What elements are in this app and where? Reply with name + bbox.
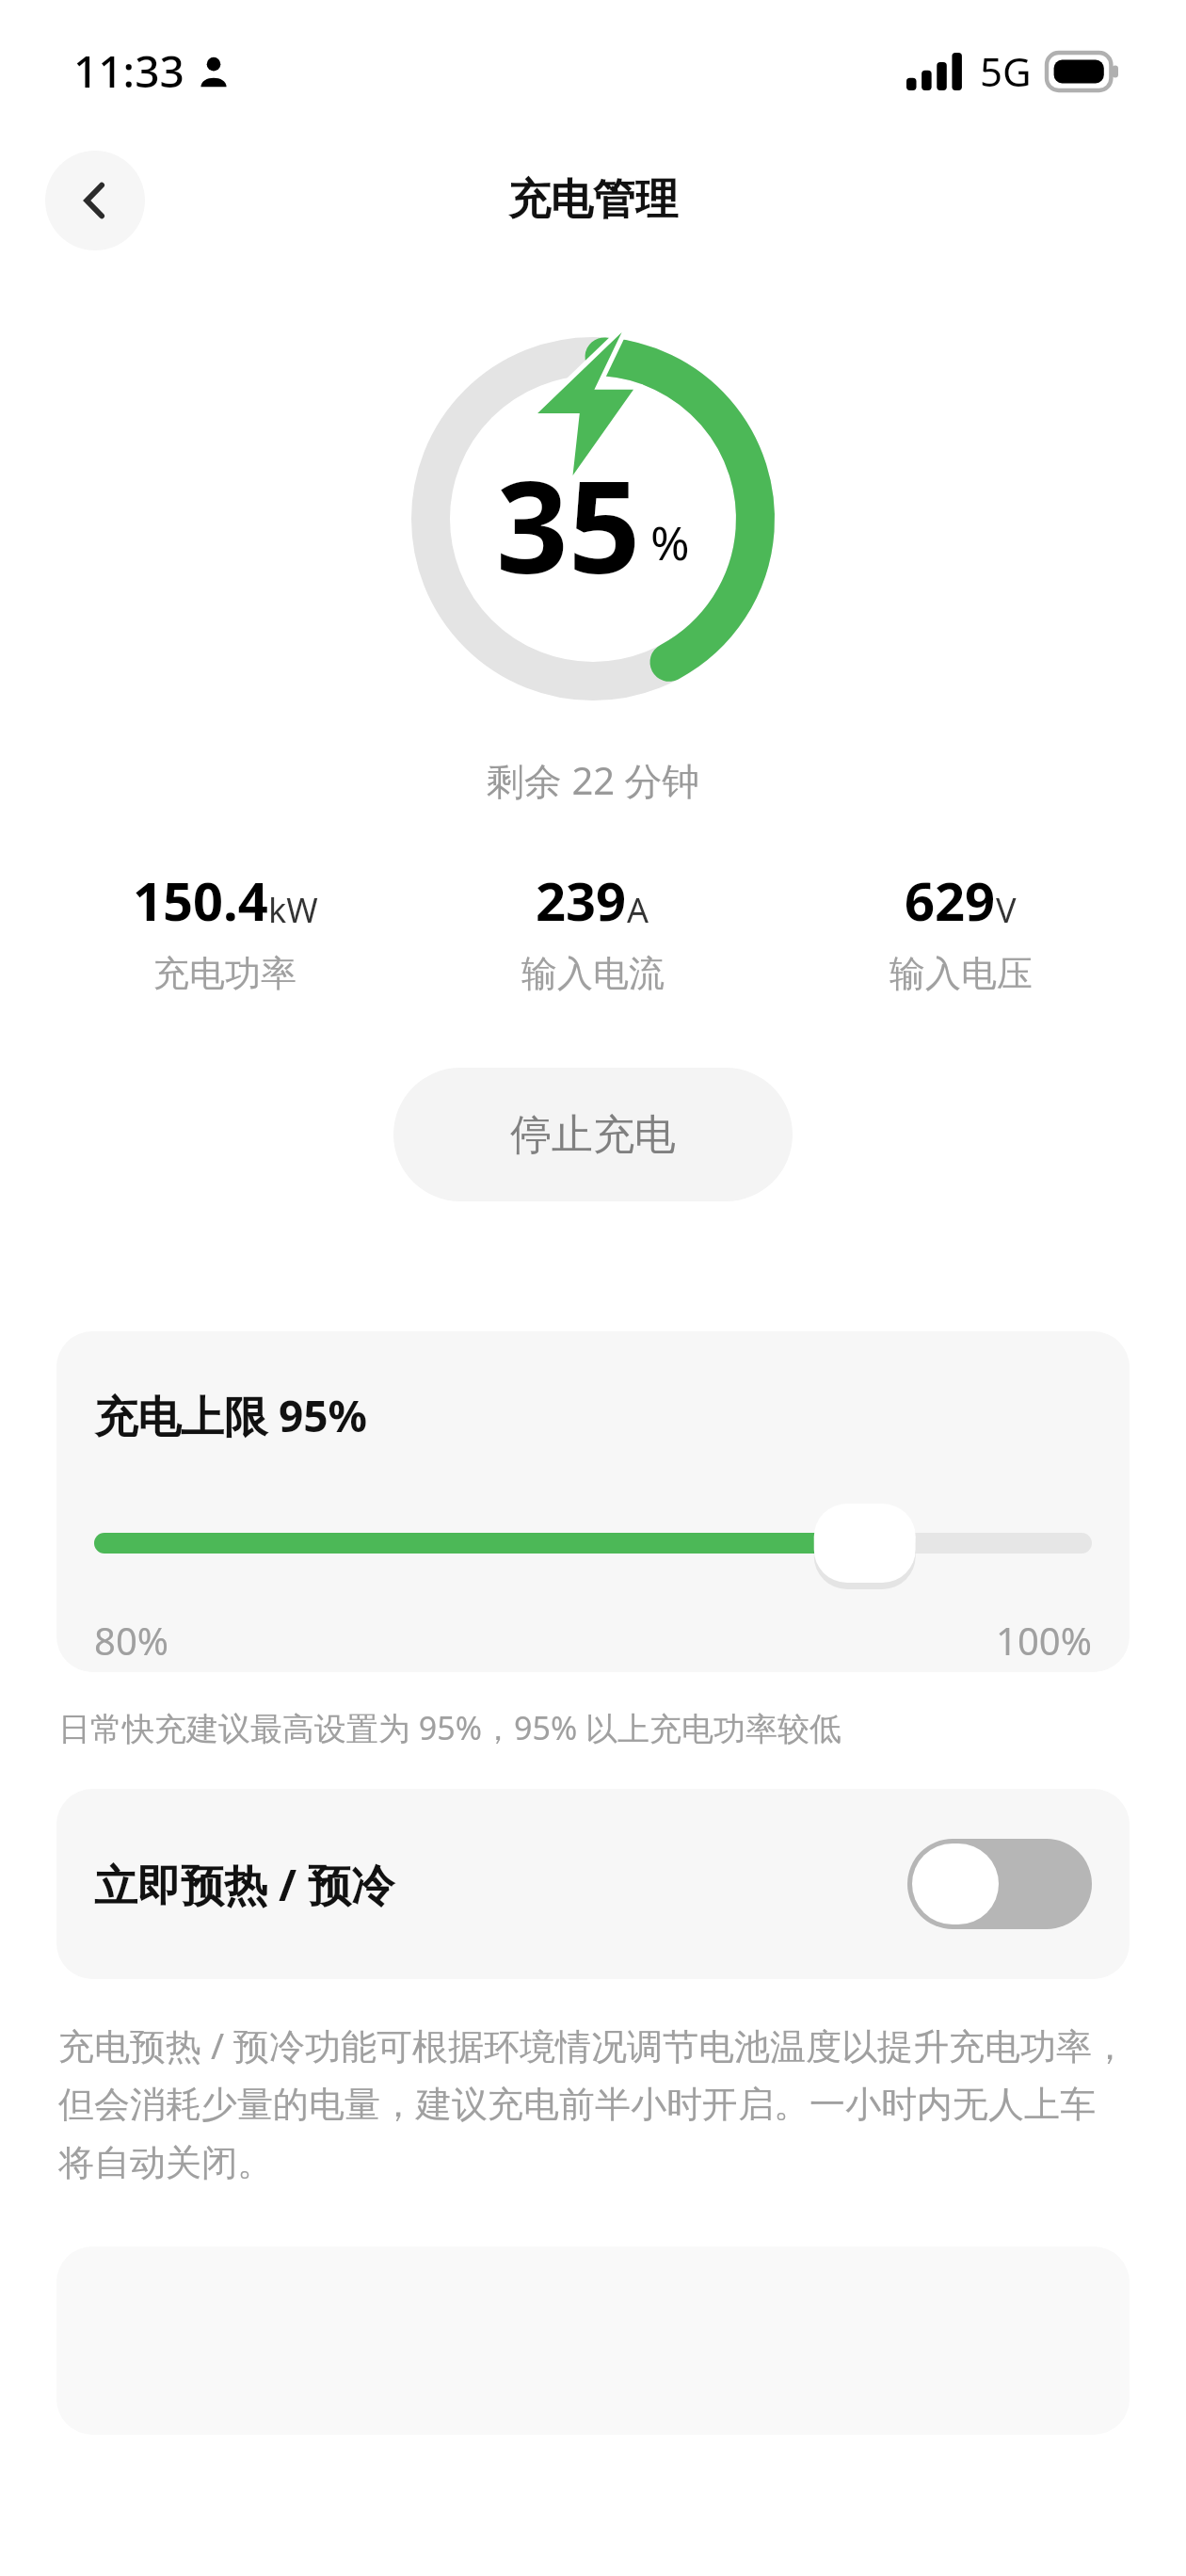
staticText: V xyxy=(996,887,1017,933)
button[interactable]: 停止充电 xyxy=(393,1068,793,1201)
staticText: 充电上限 95% xyxy=(94,1386,368,1445)
staticText: 11:33 xyxy=(73,41,184,101)
staticText: % xyxy=(650,510,690,574)
staticText: 充电功率 xyxy=(153,951,296,996)
button[interactable]: 150.4 xyxy=(41,864,409,996)
button[interactable]: 立即预热 / 预冷 xyxy=(56,1789,1130,1979)
staticText: 629 xyxy=(905,864,996,936)
staticText: 150.4 xyxy=(133,864,268,936)
button[interactable]: 239 xyxy=(409,864,777,996)
staticText: 35 xyxy=(496,439,641,611)
staticText: 日常快充建议最高设置为 95%，95% 以上充电功率较低 xyxy=(58,1706,841,1749)
button[interactable]: Back xyxy=(45,151,145,250)
staticText: 充电管理 xyxy=(508,173,678,227)
staticText: kW xyxy=(268,887,318,933)
staticText: 239 xyxy=(536,864,627,936)
staticText: 输入电压 xyxy=(889,951,1033,996)
staticText: 剩余 22 分钟 xyxy=(487,754,700,806)
staticText: 充电预热 / 预冷功能可根据环境情况调节电池温度以提升充电功率，但会消耗少量的电… xyxy=(58,2021,1128,2186)
staticText: A xyxy=(627,887,649,933)
staticText: 5G xyxy=(980,44,1032,98)
staticText: 立即预热 / 预冷 xyxy=(94,1855,395,1914)
button[interactable]: 充电上限 95% xyxy=(56,1331,1130,1672)
button[interactable]: Preheat toggle xyxy=(907,1839,1092,1929)
staticText: 输入电流 xyxy=(521,951,665,996)
staticText: 停止充电 xyxy=(510,1109,676,1161)
staticText: 100% xyxy=(996,1615,1092,1666)
staticText: 80% xyxy=(94,1615,168,1666)
button[interactable]: 629 xyxy=(777,864,1145,996)
